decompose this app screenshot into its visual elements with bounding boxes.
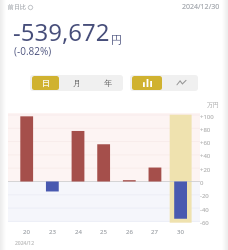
staticText: -20 <box>200 192 209 200</box>
staticText: +20 <box>200 166 211 174</box>
staticText: 月 <box>73 78 81 88</box>
staticText: 27 <box>151 228 158 236</box>
staticText: 25 <box>100 228 107 236</box>
button[interactable]: 日 <box>32 76 59 90</box>
staticText: 万円 <box>207 101 219 109</box>
button[interactable]: Line chart <box>166 76 196 90</box>
staticText: 前日比 <box>8 3 26 11</box>
button[interactable]: 月 <box>63 76 90 90</box>
staticText: 23 <box>49 228 56 236</box>
staticText: (-0.82%) <box>14 44 52 58</box>
staticText: +100 <box>200 113 214 121</box>
staticText: -60 <box>200 219 209 227</box>
staticText: 30 <box>177 228 184 236</box>
staticText: +80 <box>200 126 211 134</box>
staticText: 2024/12/30 <box>182 2 220 12</box>
staticText: 20 <box>23 228 30 236</box>
staticText: 24 <box>75 228 82 236</box>
staticText: +60 <box>200 139 211 147</box>
button[interactable]: Help <box>27 4 34 11</box>
staticText: 26 <box>126 228 133 236</box>
staticText: 円 <box>111 33 122 47</box>
staticText: 2024/12 <box>15 240 35 247</box>
staticText: 年 <box>104 78 112 88</box>
staticText: +40 <box>200 152 211 160</box>
staticText: -40 <box>200 206 209 214</box>
button[interactable]: Bar chart <box>132 76 162 90</box>
staticText: 日 <box>42 78 50 88</box>
button[interactable]: 年 <box>94 76 121 90</box>
staticText: 0 <box>200 179 204 187</box>
staticText: -539,672 <box>13 15 110 48</box>
